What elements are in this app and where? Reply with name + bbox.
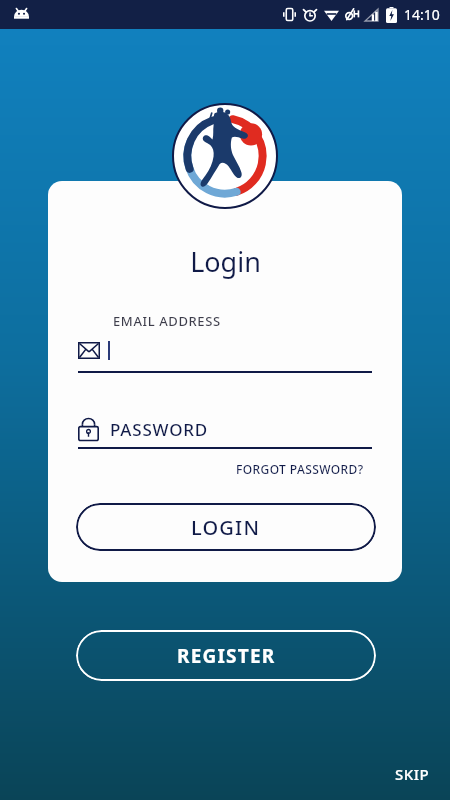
staticText: SKIP [395,764,430,784]
button[interactable]: LOGIN [76,503,376,551]
staticText: LOGIN [191,514,261,541]
staticText: Login [190,243,261,280]
button[interactable]: REGISTER [76,630,376,681]
button[interactable]: Email [78,333,372,367]
staticText: PASSWORD [110,418,209,441]
button[interactable]: FORGOT PASSWORD? [234,458,366,480]
staticText: REGISTER [177,643,276,669]
other: Password [78,417,99,441]
staticText: FORGOT PASSWORD? [236,461,364,477]
button[interactable]: SKIP [389,760,436,788]
button[interactable]: Password [78,413,372,445]
staticText: EMAIL ADDRESS [113,312,221,330]
other: Email [78,342,100,359]
staticText: 14:10 [404,5,440,24]
